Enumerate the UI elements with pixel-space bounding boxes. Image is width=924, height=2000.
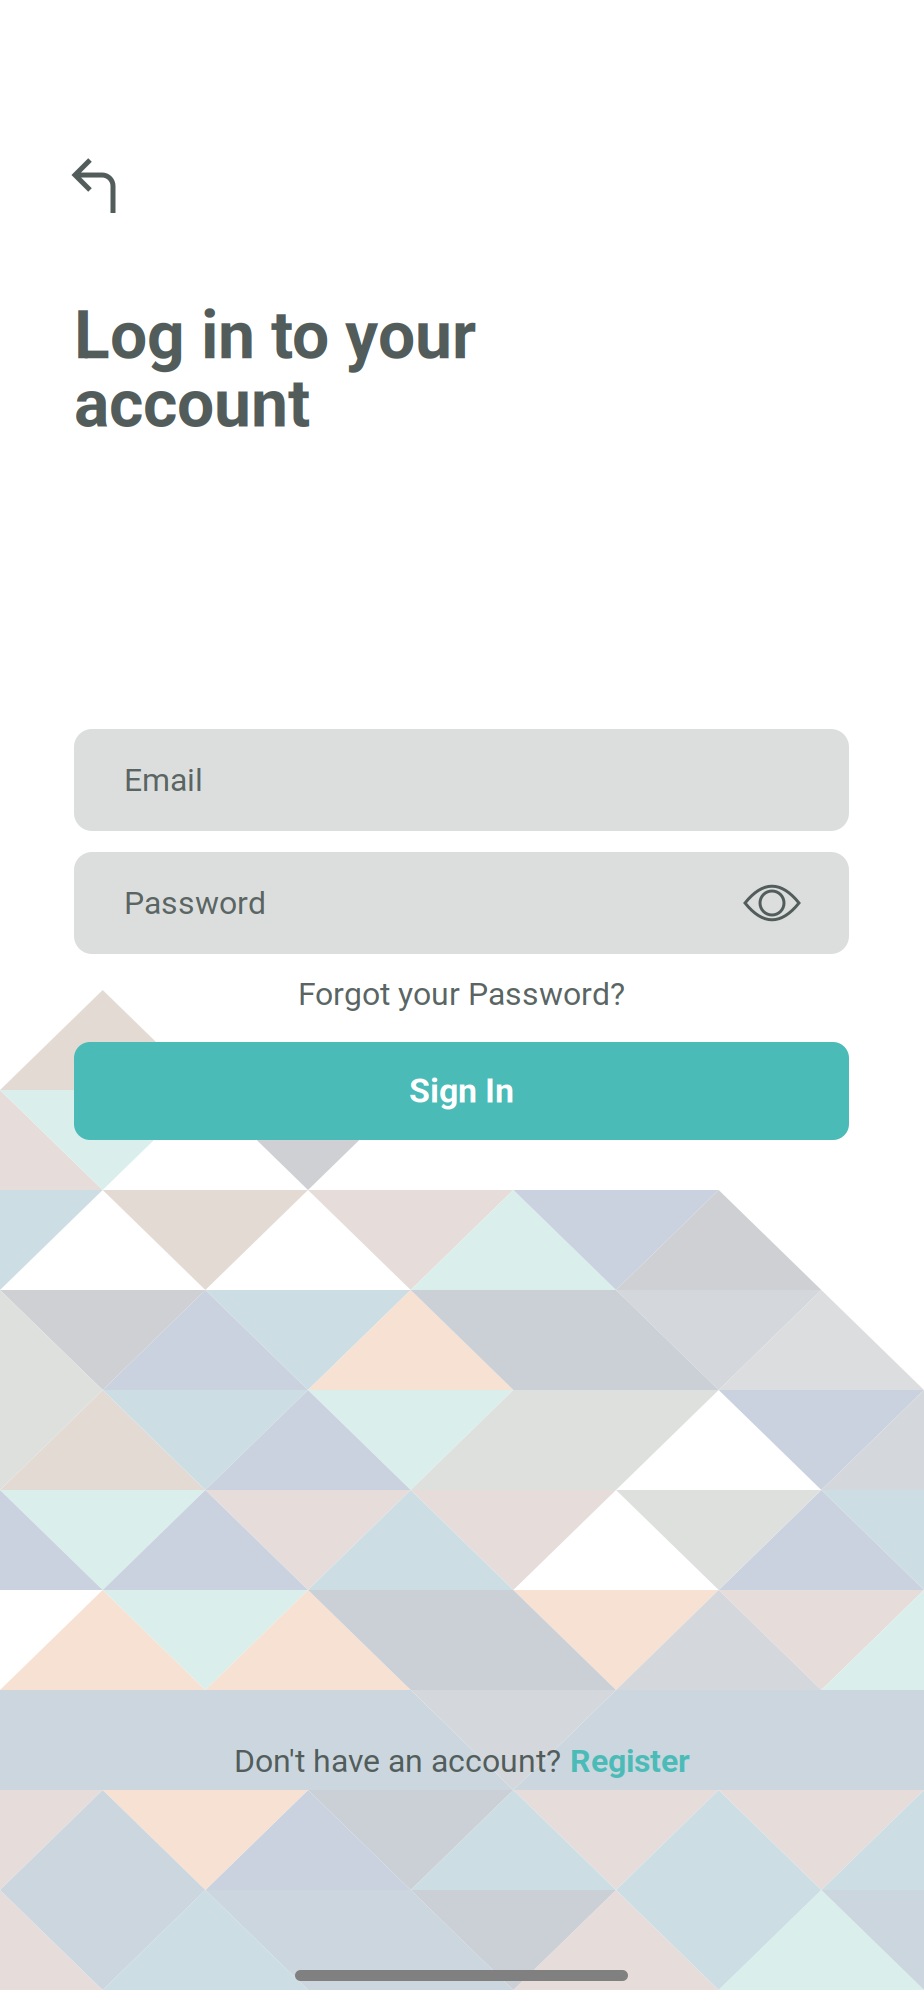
button[interactable]: Back — [53, 140, 141, 238]
button[interactable]: Sign In — [74, 1042, 849, 1140]
button[interactable]: Forgot your Password? — [74, 966, 849, 1022]
button[interactable]: Show password — [745, 888, 799, 918]
staticText: Log in to your — [74, 297, 476, 374]
staticText: Password — [124, 884, 266, 922]
staticText: Register — [570, 1742, 690, 1780]
staticText: Sign In — [409, 1071, 514, 1111]
button[interactable]: Don't have an account? — [0, 1733, 924, 1789]
staticText: Don't have an account? — [234, 1742, 561, 1780]
staticText: account — [74, 365, 310, 443]
staticText: Forgot your Password? — [298, 975, 625, 1013]
staticText: Email — [124, 761, 203, 799]
